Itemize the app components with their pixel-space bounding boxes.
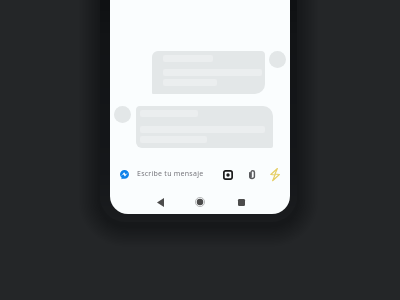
button[interactable]: Escribe tu mensaje: [137, 169, 204, 179]
button[interactable]: Attach file: [249, 170, 255, 179]
button[interactable]: Back: [150, 192, 170, 212]
button[interactable]: Messenger: [120, 170, 129, 179]
button[interactable]: Home: [190, 192, 210, 212]
button[interactable]: Quick actions: [270, 168, 280, 181]
button[interactable]: Recent apps: [231, 192, 251, 212]
button[interactable]: Camera: [223, 170, 233, 180]
